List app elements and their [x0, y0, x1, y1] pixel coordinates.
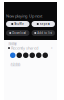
button[interactable]: Add to list [31, 30, 55, 36]
button[interactable]: Download [6, 30, 29, 36]
staticText: Shuffle [14, 22, 24, 26]
staticText: Recently shared [11, 45, 38, 51]
staticText: x [51, 46, 52, 50]
button[interactable]: Repeat [31, 21, 55, 27]
staticText: Add to list [37, 31, 52, 35]
button[interactable]: Second [16, 52, 22, 58]
button[interactable]: Shuffle [6, 21, 29, 27]
staticText: 12:04 [11, 63, 20, 66]
staticText: Up next [29, 13, 42, 19]
staticText: Repeat [40, 22, 50, 26]
button[interactable]: First [10, 52, 15, 58]
button[interactable]: Third [23, 52, 28, 58]
button[interactable]: Fourth [29, 52, 35, 58]
button[interactable]: Fifth [36, 52, 41, 58]
staticText: Today [9, 42, 16, 45]
staticText: Download [12, 31, 26, 35]
button[interactable]: Sixth [42, 52, 48, 58]
staticText: Now playing [6, 13, 27, 19]
